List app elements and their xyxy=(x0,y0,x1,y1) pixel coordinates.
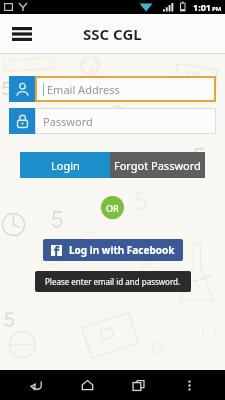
button[interactable]: Home xyxy=(72,370,102,400)
button[interactable]: Login xyxy=(20,152,110,178)
staticText: Log in with Facebook xyxy=(69,243,175,257)
staticText: Forgot Password xyxy=(114,158,201,173)
button[interactable]: Forgot Password xyxy=(110,152,205,178)
button[interactable]: Back xyxy=(21,370,51,400)
staticText: OR xyxy=(106,202,119,214)
staticText: PM xyxy=(212,5,222,13)
staticText: Login xyxy=(51,158,80,173)
staticText: SSC CGL xyxy=(83,24,142,44)
staticText: 1:01 xyxy=(193,1,211,13)
button[interactable]: Password xyxy=(9,108,216,134)
button[interactable]: Log in with Facebook xyxy=(51,239,175,261)
staticText: Please enter email id and password. xyxy=(45,276,181,287)
button[interactable]: Email Address xyxy=(9,76,216,102)
button[interactable]: Open navigation menu xyxy=(6,18,38,50)
staticText: Email Address xyxy=(47,82,120,97)
button[interactable]: Recent apps xyxy=(123,370,153,400)
staticText: Password xyxy=(43,114,93,129)
button[interactable]: More options xyxy=(174,370,204,400)
